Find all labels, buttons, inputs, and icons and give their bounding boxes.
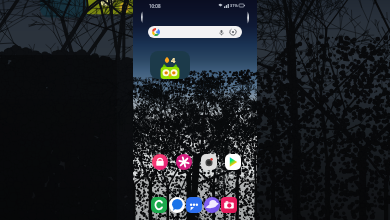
button[interactable]: Galaxy Store [152, 154, 168, 170]
button[interactable]: Google [148, 26, 242, 38]
button[interactable]: Chat [186, 197, 202, 213]
button[interactable]: Voice search [218, 29, 225, 36]
button[interactable]: Duolingo widget [150, 51, 190, 79]
button[interactable]: Browser [204, 197, 220, 213]
other: Google [152, 28, 160, 36]
button[interactable]: Themes [176, 154, 192, 170]
staticText: 10:08 [149, 3, 161, 9]
button[interactable]: Google Lens [229, 28, 237, 36]
staticText: 4 [171, 55, 176, 65]
button[interactable]: Phone [151, 197, 167, 213]
staticText: 31% [230, 3, 238, 8]
button[interactable]: Play Store [225, 154, 241, 170]
button[interactable]: Camera [201, 154, 217, 170]
button[interactable]: Camera app [221, 197, 237, 213]
button[interactable]: Messages [169, 197, 185, 213]
